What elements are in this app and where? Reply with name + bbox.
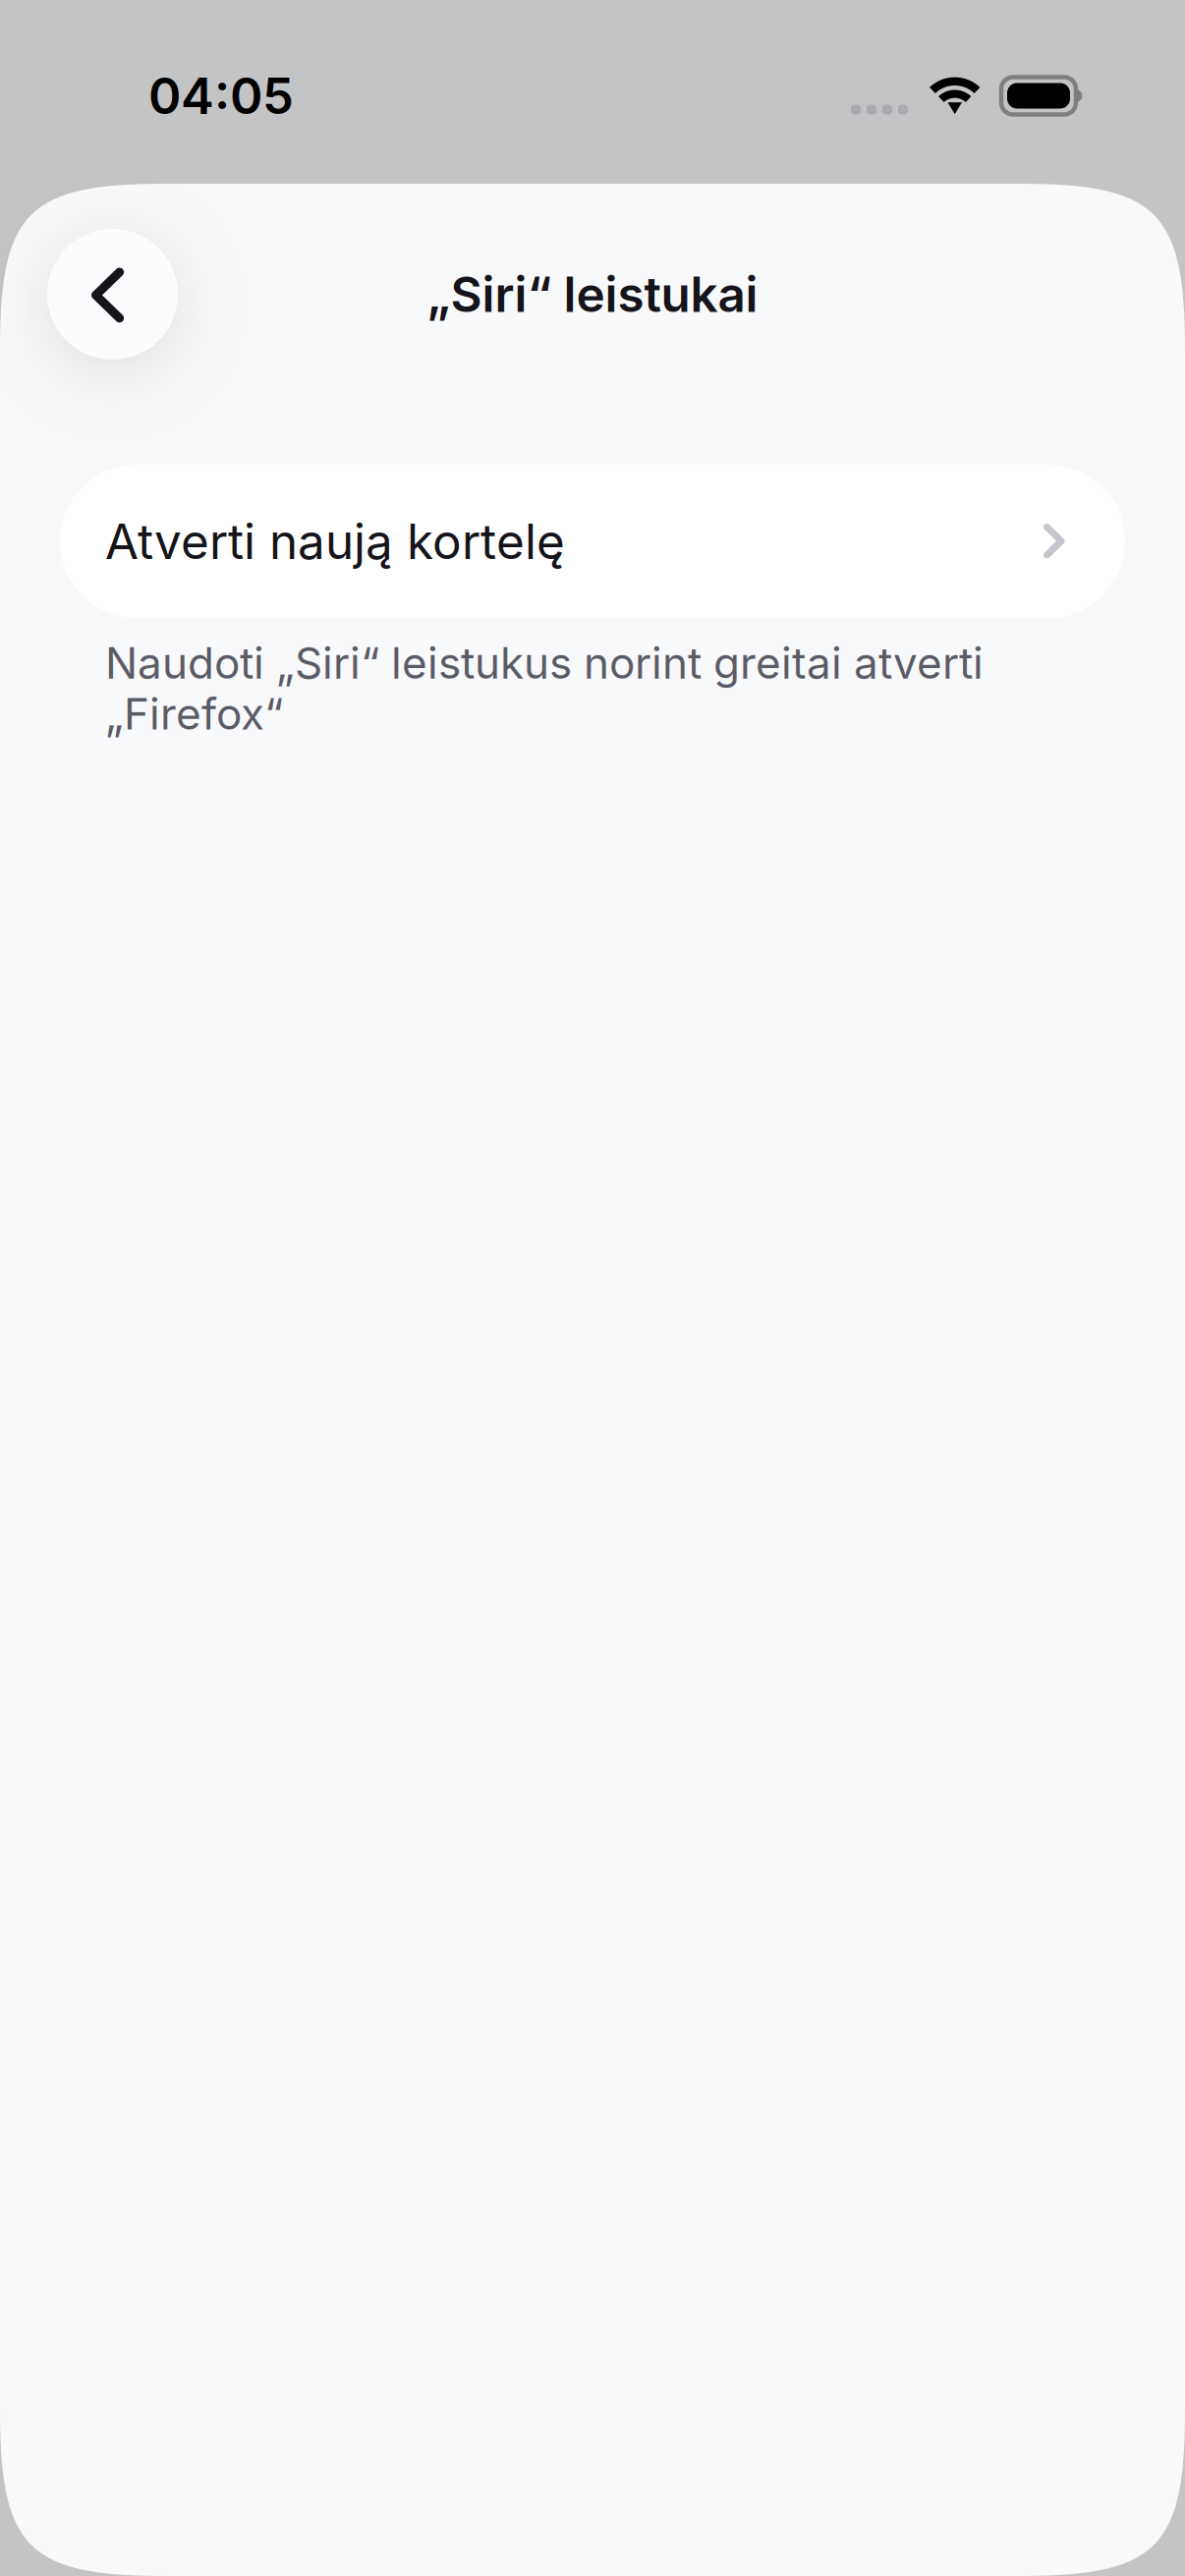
button[interactable]: Atverti naują kortelę: [60, 465, 1125, 618]
staticText: Naudoti „Siri“ leistukus norint greitai …: [105, 638, 984, 739]
button[interactable]: Back: [47, 229, 178, 360]
staticText: „Siri“ leistukai: [427, 265, 758, 324]
staticText: 04:05: [148, 66, 294, 126]
staticText: Atverti naują kortelę: [105, 512, 565, 571]
